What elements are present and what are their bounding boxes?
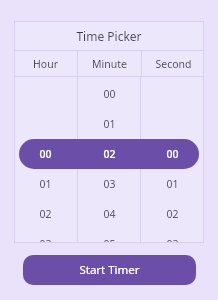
button[interactable]: 01 xyxy=(14,169,77,199)
staticText: 02 xyxy=(39,207,52,221)
button[interactable]: 04 xyxy=(78,199,140,229)
staticText: Time Picker xyxy=(76,28,142,44)
button[interactable]: 05 xyxy=(78,229,140,243)
staticText: 03 xyxy=(166,237,179,243)
button[interactable]: Minute xyxy=(78,51,141,76)
button[interactable]: 03 xyxy=(14,229,77,243)
staticText: 03 xyxy=(103,177,116,191)
staticText: 02 xyxy=(103,147,116,161)
button[interactable]: Time Picker xyxy=(14,21,204,50)
button[interactable]: 01 xyxy=(141,169,204,199)
staticText: 05 xyxy=(103,237,116,243)
button[interactable]: Start Timer xyxy=(23,255,196,285)
staticText: 00 xyxy=(103,87,116,101)
button[interactable]: 03 xyxy=(141,229,204,243)
button[interactable]: 02 xyxy=(78,139,140,169)
staticText: 00 xyxy=(39,147,52,161)
button[interactable]: Hour xyxy=(14,51,77,76)
button[interactable]: 01 xyxy=(78,109,140,139)
staticText: 03 xyxy=(39,237,52,243)
button[interactable]: 02 xyxy=(141,199,204,229)
staticText: Minute xyxy=(92,57,127,71)
staticText: 00 xyxy=(166,147,179,161)
staticText: 01 xyxy=(166,177,179,191)
button[interactable]: 02 xyxy=(14,199,77,229)
staticText: 04 xyxy=(103,207,116,221)
staticText: Second xyxy=(155,57,192,71)
button[interactable]: 00 xyxy=(141,139,204,169)
button[interactable]: 03 xyxy=(78,169,140,199)
button[interactable]: Second xyxy=(142,51,204,76)
staticText: 02 xyxy=(166,207,179,221)
staticText: 01 xyxy=(39,177,52,191)
staticText: 01 xyxy=(103,117,116,131)
button[interactable]: 00 xyxy=(14,139,77,169)
button[interactable]: 00 xyxy=(78,79,140,109)
staticText: Start Timer xyxy=(79,262,140,278)
staticText: Hour xyxy=(33,57,58,71)
